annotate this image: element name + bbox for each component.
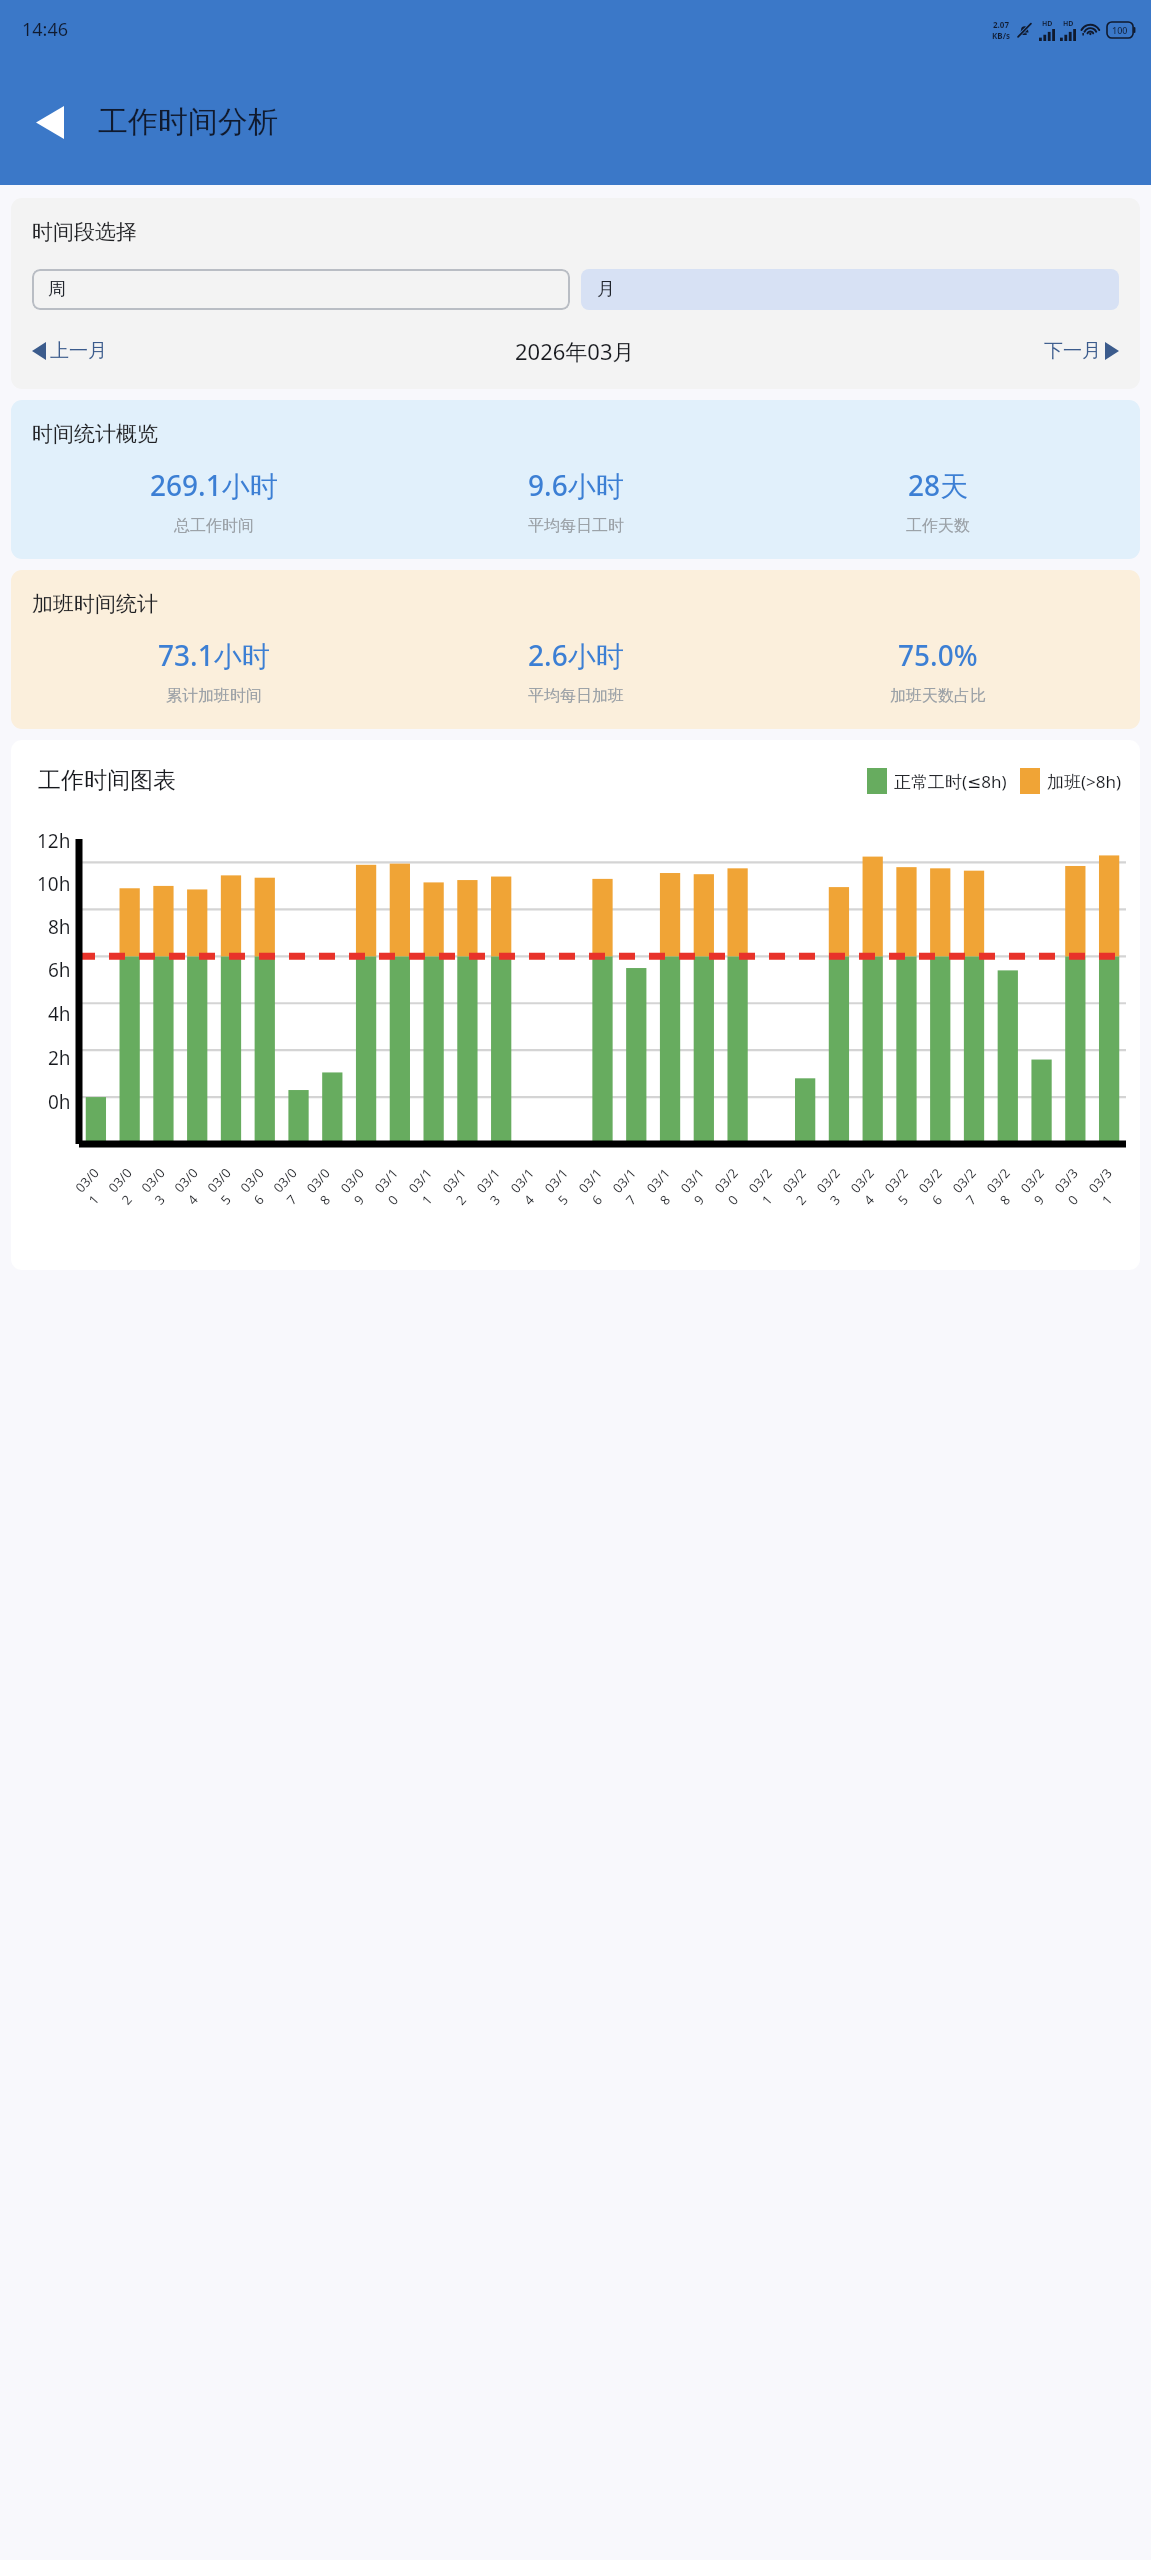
staticText: 03/11 [404, 1159, 454, 1209]
staticText: 03/25 [880, 1159, 930, 1209]
staticText: 2.07 [993, 19, 1009, 30]
staticText: 加班天数占比 [890, 686, 986, 706]
staticText: 加班(>8h) [1047, 770, 1122, 793]
button[interactable]: 月 [581, 269, 1119, 310]
staticText: 03/03 [137, 1160, 186, 1208]
staticText: 03/19 [676, 1159, 726, 1209]
staticText: 03/22 [778, 1159, 828, 1209]
staticText: 累计加班时间 [166, 686, 262, 706]
staticText: 工作时间分析 [98, 103, 278, 141]
staticText: 9.6小时 [528, 466, 624, 504]
staticText: 03/30 [1050, 1159, 1100, 1209]
staticText: 03/21 [744, 1159, 794, 1209]
staticText: 03/04 [170, 1160, 219, 1208]
staticText: 加班时间统计 [32, 591, 158, 617]
staticText: 周 [48, 278, 66, 301]
staticText: 工作天数 [906, 516, 970, 536]
staticText: 03/15 [540, 1159, 590, 1209]
staticText: 03/20 [710, 1159, 760, 1209]
staticText: 03/18 [642, 1159, 692, 1209]
staticText: 工作时间图表 [38, 766, 176, 795]
staticText: 03/31 [1084, 1159, 1134, 1209]
button[interactable]: Back [18, 90, 82, 154]
staticText: 时间统计概览 [32, 421, 158, 447]
staticText: HD [1063, 19, 1074, 29]
staticText: KB/s [992, 30, 1010, 41]
staticText: 4h [48, 1001, 71, 1027]
staticText: 上一月 [50, 339, 107, 363]
staticText: 03/23 [812, 1159, 862, 1209]
staticText: 03/26 [914, 1159, 964, 1209]
staticText: 14:46 [22, 17, 69, 42]
staticText: 73.1小时 [158, 636, 270, 674]
staticText: 03/13 [472, 1159, 522, 1209]
staticText: 2.6小时 [528, 636, 624, 674]
staticText: 03/29 [1016, 1159, 1066, 1209]
staticText: 03/12 [438, 1159, 488, 1209]
staticText: 8h [48, 914, 71, 940]
staticText: 03/06 [236, 1160, 285, 1208]
button[interactable]: 上一月 [32, 339, 107, 363]
staticText: 03/24 [846, 1159, 896, 1209]
staticText: 下一月 [1044, 339, 1101, 363]
staticText: 平均每日工时 [528, 516, 624, 536]
staticText: 10h [37, 871, 71, 897]
staticText: 2026年03月 [515, 336, 635, 366]
staticText: 03/10 [370, 1159, 420, 1209]
staticText: 03/07 [269, 1160, 318, 1208]
staticText: 100 [1112, 24, 1128, 36]
staticText: 时间段选择 [32, 219, 137, 245]
staticText: 0h [48, 1089, 71, 1115]
staticText: 28天 [908, 466, 969, 504]
staticText: 03/09 [336, 1159, 386, 1209]
staticText: HD [1042, 19, 1053, 29]
staticText: 12h [37, 828, 71, 854]
staticText: 6h [48, 957, 71, 983]
staticText: 正常工时(≤8h) [894, 770, 1007, 793]
staticText: 03/16 [574, 1159, 624, 1209]
staticText: 03/05 [203, 1160, 252, 1208]
staticText: 269.1小时 [150, 466, 278, 504]
staticText: 03/08 [302, 1159, 352, 1209]
staticText: 03/02 [104, 1160, 153, 1208]
staticText: 03/17 [608, 1159, 658, 1209]
staticText: 03/28 [982, 1159, 1032, 1209]
staticText: 03/14 [506, 1159, 556, 1209]
staticText: 总工作时间 [174, 516, 254, 536]
staticText: 75.0% [898, 636, 978, 674]
button[interactable]: 下一月 [1044, 339, 1119, 363]
button[interactable]: 周 [32, 269, 570, 310]
staticText: 平均每日加班 [528, 686, 624, 706]
staticText: 月 [597, 278, 615, 301]
staticText: 2h [48, 1045, 71, 1071]
staticText: 03/01 [71, 1160, 120, 1208]
staticText: 03/27 [948, 1159, 998, 1209]
